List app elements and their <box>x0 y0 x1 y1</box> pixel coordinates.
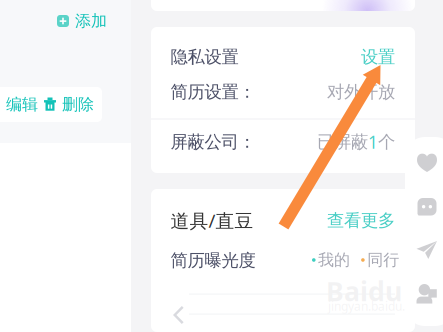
button[interactable]: 隐私设置 <box>170 47 310 67</box>
staticText: 我的 <box>318 250 350 270</box>
button[interactable]: 设置 <box>275 47 395 67</box>
staticText: 隐私设置 <box>170 46 238 68</box>
staticText: 1 <box>368 130 378 153</box>
staticText: 简历设置： <box>170 81 255 103</box>
staticText: 个 <box>378 131 395 153</box>
staticText: 删除 <box>62 95 94 114</box>
button[interactable]: 道具/直豆 <box>170 210 310 230</box>
staticText: jingyan.baidu.com <box>328 298 429 314</box>
button[interactable]: Previous <box>173 306 184 324</box>
button[interactable]: Contacts <box>410 279 443 309</box>
staticText: 简历曝光度 <box>170 250 255 271</box>
staticText: 同行 <box>367 250 399 270</box>
staticText: 道具/直豆 <box>170 208 253 233</box>
button[interactable]: 简历设置： <box>170 82 310 102</box>
button[interactable]: 查看更多 <box>275 210 395 230</box>
staticText: 添加 <box>75 11 107 31</box>
staticText: 屏蔽公司： <box>170 131 255 153</box>
button[interactable]: 对外开放 <box>275 82 395 102</box>
staticText: 查看更多 <box>327 210 395 231</box>
staticText: Baidu 经验 <box>326 273 443 309</box>
staticText: 已屏蔽 <box>317 131 368 153</box>
button[interactable]: 编辑 <box>0 87 102 122</box>
button[interactable]: Like <box>410 148 443 178</box>
button[interactable]: 简历曝光度 <box>170 250 310 270</box>
staticText: 编辑 <box>6 95 38 114</box>
staticText: 对外开放 <box>327 81 395 103</box>
button[interactable]: Comment <box>410 192 443 222</box>
button[interactable]: 屏蔽公司： <box>170 132 310 152</box>
staticText: 设置 <box>361 46 395 68</box>
button[interactable]: 添加 <box>57 12 117 30</box>
button[interactable]: Share <box>410 235 443 265</box>
